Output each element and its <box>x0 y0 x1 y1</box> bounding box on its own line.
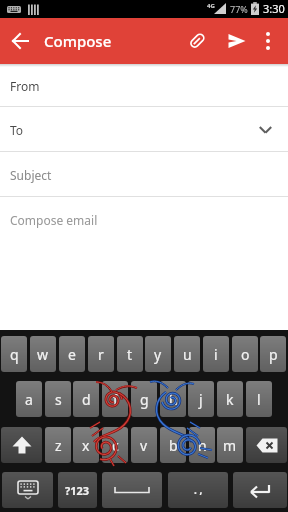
button[interactable] <box>1 427 42 463</box>
button[interactable] <box>227 18 247 64</box>
button[interactable]: w <box>30 336 56 372</box>
button[interactable]: ?123 <box>58 472 97 508</box>
button[interactable]: i <box>203 336 229 372</box>
staticText: q <box>10 345 19 364</box>
button[interactable]: From <box>0 64 288 107</box>
button[interactable] <box>2 472 53 508</box>
staticText: ?123 <box>65 483 90 498</box>
button[interactable]: r <box>88 336 114 372</box>
staticText: z <box>55 436 62 455</box>
staticText: . , <box>194 483 203 497</box>
button[interactable]: c <box>102 427 128 463</box>
button[interactable] <box>246 427 287 463</box>
button[interactable]: e <box>59 336 85 372</box>
staticText: r <box>98 345 104 364</box>
staticText: m <box>223 436 237 455</box>
button[interactable]: f <box>102 381 128 417</box>
staticText: l <box>257 390 261 409</box>
staticText: f <box>113 390 118 409</box>
staticText: Compose <box>44 31 112 51</box>
button[interactable]: a <box>16 381 42 417</box>
staticText: e <box>68 345 76 364</box>
staticText: w <box>37 345 49 364</box>
staticText: x <box>82 436 90 455</box>
staticText: u <box>183 345 192 364</box>
button[interactable]: y <box>145 336 171 372</box>
staticText: j <box>199 390 203 409</box>
button[interactable] <box>261 18 275 64</box>
button[interactable]: p <box>260 336 286 372</box>
staticText: t <box>127 345 133 364</box>
button[interactable]: k <box>217 381 243 417</box>
staticText: n <box>198 436 207 455</box>
staticText: g <box>140 390 149 409</box>
staticText: s <box>55 390 62 409</box>
staticText: To <box>10 122 24 138</box>
button[interactable]: m <box>217 427 243 463</box>
button[interactable]: o <box>232 336 258 372</box>
button[interactable]: j <box>188 381 214 417</box>
button[interactable] <box>186 18 208 64</box>
staticText: d <box>82 390 91 409</box>
button[interactable]: d <box>73 381 99 417</box>
staticText: 3:30 <box>263 1 285 16</box>
button[interactable]: Compose email <box>0 197 288 242</box>
button[interactable]: q <box>1 336 27 372</box>
staticText: c <box>112 436 119 455</box>
button[interactable]: g <box>131 381 157 417</box>
staticText: k <box>226 390 234 409</box>
staticText: Subject <box>10 167 52 183</box>
button[interactable]: . , <box>168 472 228 508</box>
button[interactable] <box>233 472 287 508</box>
staticText: 77% <box>230 3 248 15</box>
button[interactable]: s <box>45 381 71 417</box>
button[interactable]: n <box>189 427 215 463</box>
button[interactable]: To <box>0 107 288 152</box>
button[interactable]: l <box>246 381 272 417</box>
staticText: y <box>154 345 162 364</box>
staticText: 4G <box>207 2 215 10</box>
staticText: From <box>10 78 40 94</box>
staticText: Compose email <box>10 212 98 228</box>
button[interactable]: v <box>131 427 157 463</box>
staticText: b <box>169 436 178 455</box>
staticText: p <box>269 345 278 364</box>
button[interactable]: Subject <box>0 152 288 197</box>
staticText: v <box>140 436 148 455</box>
staticText: h <box>169 390 178 409</box>
button[interactable]: u <box>174 336 200 372</box>
button[interactable] <box>0 18 40 64</box>
button[interactable]: z <box>45 427 71 463</box>
staticText: i <box>214 345 218 364</box>
button[interactable]: t <box>117 336 143 372</box>
staticText: o <box>241 345 250 364</box>
button[interactable]: x <box>73 427 99 463</box>
button[interactable] <box>102 472 162 508</box>
button[interactable]: b <box>160 427 186 463</box>
button[interactable]: h <box>160 381 186 417</box>
staticText: a <box>25 390 33 409</box>
